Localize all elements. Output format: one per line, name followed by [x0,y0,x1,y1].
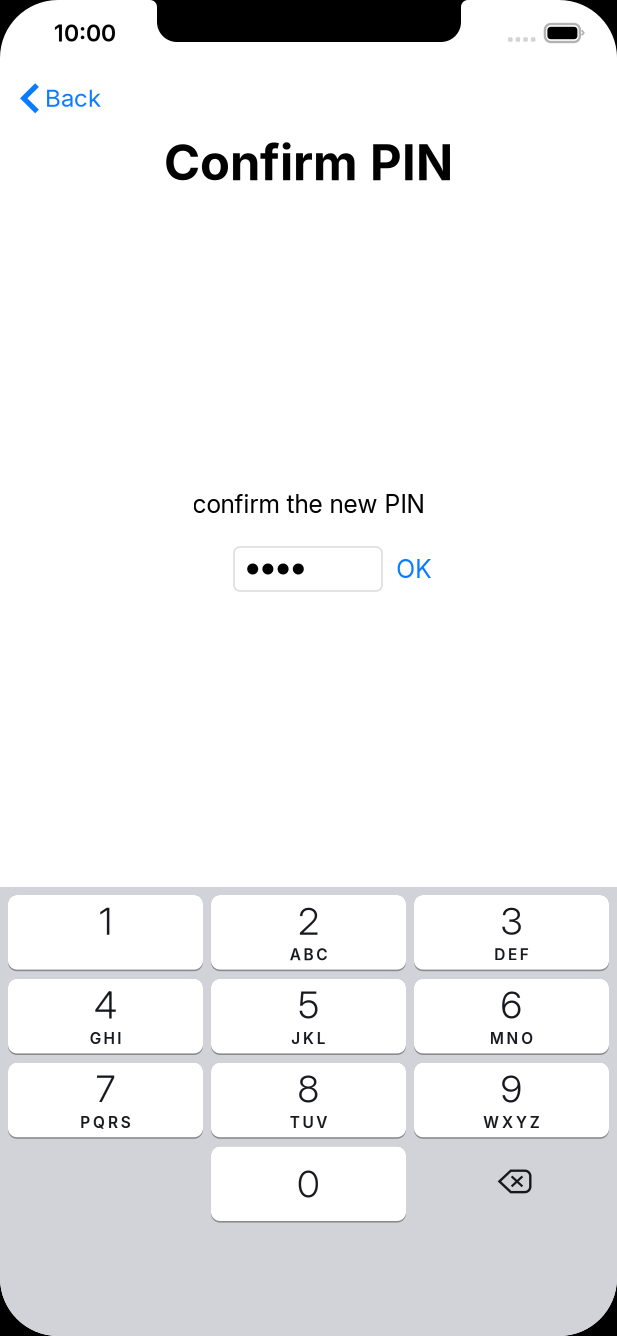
button[interactable]: Back [0,75,115,121]
staticText: DEF [494,945,529,964]
button[interactable]: 1 [8,895,203,970]
staticText: 2 [298,898,319,944]
staticText: 3 [500,898,522,944]
staticText: JKL [291,1029,326,1048]
button[interactable]: 2 [211,895,406,970]
staticText: Back [45,83,101,113]
staticText: 10:00 [54,19,116,47]
staticText: 8 [297,1066,319,1111]
staticText: OK [396,554,431,584]
button[interactable]: 0 [211,1146,406,1221]
button[interactable]: OK [383,547,445,591]
button[interactable]: 7 [8,1063,203,1137]
button[interactable]: 3 [414,895,609,970]
staticText: 0 [297,1161,320,1207]
button[interactable]: Delete [414,1146,609,1221]
staticText: ABC [290,945,327,964]
staticText: GHI [90,1029,121,1048]
staticText: 5 [298,982,319,1028]
button[interactable]: 4 [8,979,203,1053]
staticText: 4 [94,982,117,1028]
button[interactable]: 5 [211,979,406,1053]
staticText: TUV [290,1113,327,1132]
staticText: 7 [95,1066,115,1111]
button[interactable]: 8 [211,1063,406,1137]
staticText: 6 [500,982,522,1028]
staticText: WXYZ [483,1113,540,1132]
staticText: 1 [99,898,112,944]
button[interactable]: 9 [414,1063,609,1137]
button[interactable]: 6 [414,979,609,1053]
staticText: Confirm PIN [164,133,453,192]
staticText: confirm the new PIN [192,489,424,519]
staticText: PQRS [80,1113,131,1132]
staticText: 9 [500,1066,522,1111]
staticText: MNO [490,1029,533,1048]
